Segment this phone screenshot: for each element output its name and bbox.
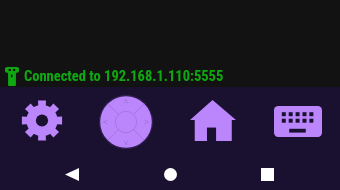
- button[interactable]: Settings: [21, 100, 63, 141]
- button[interactable]: Home: [190, 100, 236, 141]
- staticText: Connected to 192.168.1.110:5555: [24, 68, 224, 85]
- button[interactable]: Home: [164, 168, 177, 181]
- button[interactable]: Keyboard: [274, 106, 322, 137]
- button[interactable]: Directional pad: [99, 95, 153, 149]
- button[interactable]: Back: [65, 168, 79, 181]
